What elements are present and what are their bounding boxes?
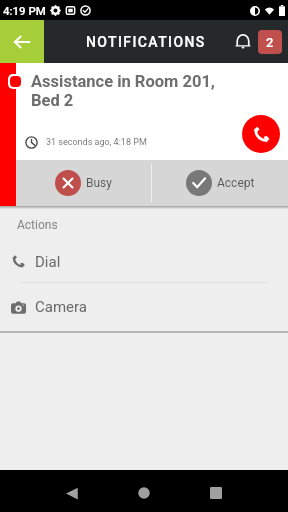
- staticText: Bed 2: [31, 91, 74, 110]
- staticText: Dial: [35, 253, 61, 271]
- button[interactable]: Notifications: [228, 27, 258, 57]
- button[interactable]: Home: [126, 475, 162, 511]
- staticText: Accept: [217, 176, 255, 190]
- staticText: 4:19 PM: [3, 4, 46, 17]
- button[interactable]: Accept: [152, 160, 288, 206]
- staticText: Busy: [86, 176, 112, 190]
- button[interactable]: 2: [258, 30, 282, 54]
- button[interactable]: Recents: [198, 475, 234, 511]
- staticText: Assistance in Room 201,: [31, 72, 215, 91]
- staticText: 2: [266, 35, 274, 50]
- button[interactable]: Busy: [16, 160, 151, 206]
- staticText: Actions: [17, 218, 58, 232]
- button[interactable]: Dial: [0, 241, 288, 282]
- button[interactable]: Call: [242, 115, 280, 153]
- staticText: NOTIFICATIONS: [86, 34, 206, 50]
- staticText: 31 seconds ago, 4:18 PM: [46, 137, 147, 148]
- button[interactable]: Back: [0, 20, 44, 63]
- button[interactable]: Camera: [0, 283, 288, 331]
- button[interactable]: Back: [53, 475, 89, 511]
- staticText: Camera: [35, 298, 87, 316]
